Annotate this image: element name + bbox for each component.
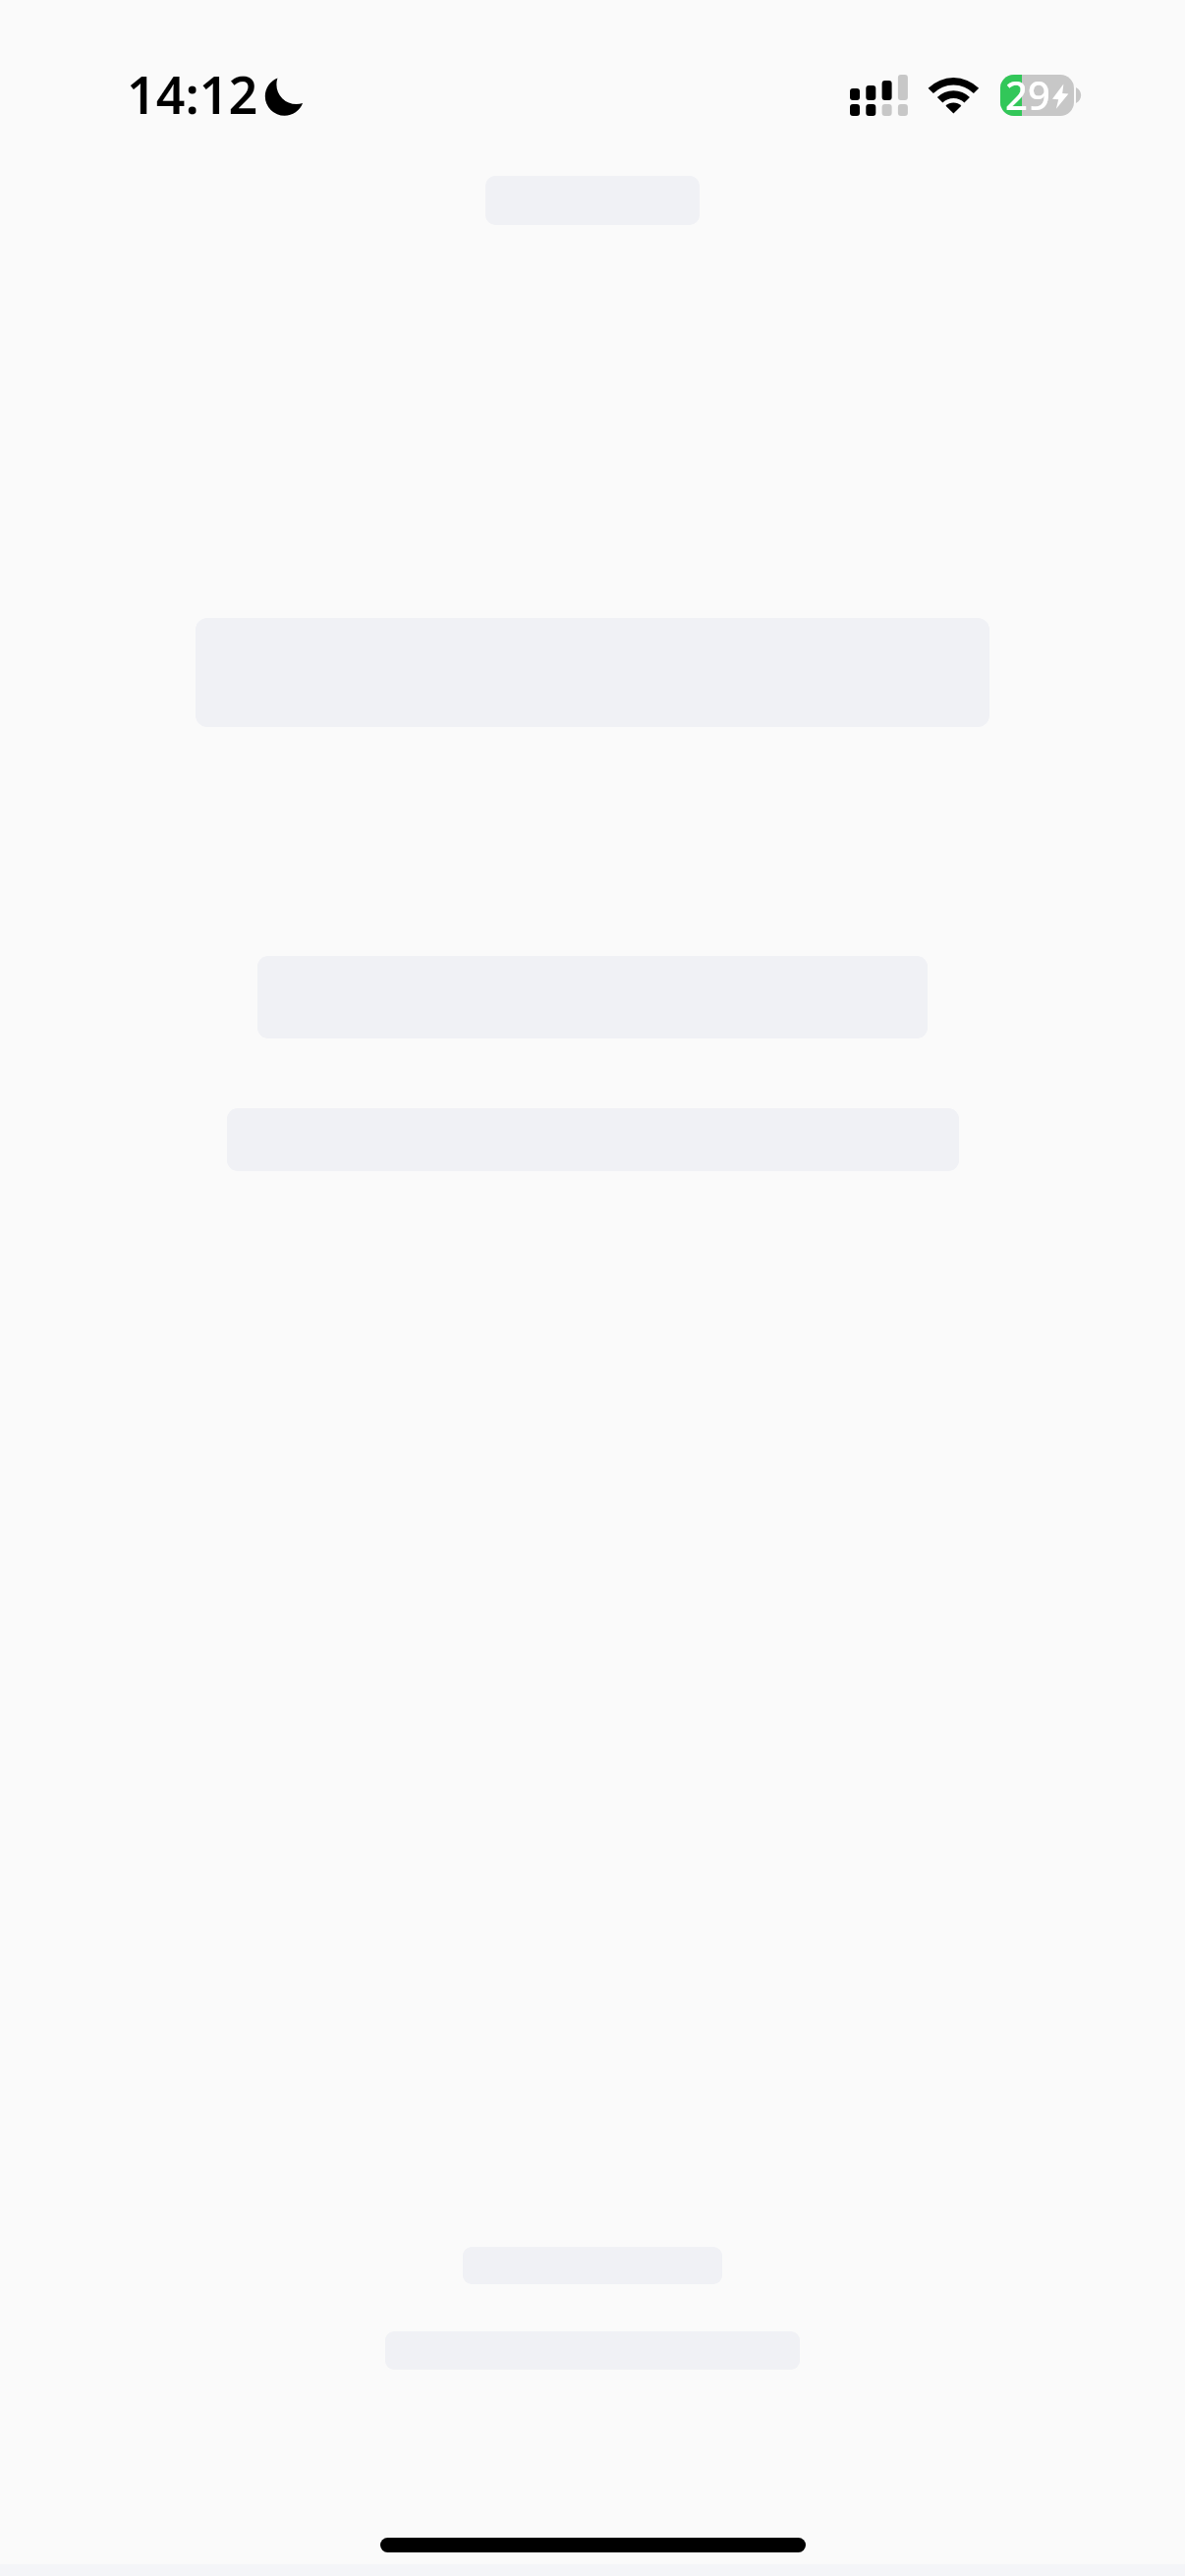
other: Do not disturb — [261, 73, 309, 120]
other: Mobile signal strength — [850, 73, 909, 118]
staticText: 29 — [1005, 68, 1050, 121]
other: Wi-Fi connected — [918, 75, 990, 118]
button[interactable]: 14:12 — [127, 59, 258, 129]
other: Home — [380, 2538, 806, 2552]
staticText: 14:12 — [127, 59, 258, 129]
other: Battery 29 percent, charging — [1000, 75, 1074, 116]
